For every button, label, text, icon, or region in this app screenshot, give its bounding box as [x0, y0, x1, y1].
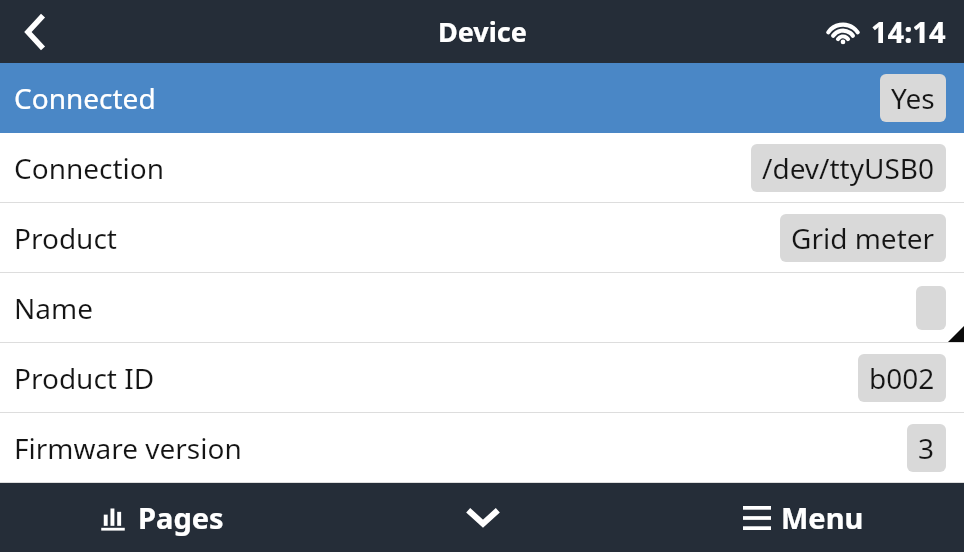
other: Wi-Fi [825, 18, 861, 46]
staticText: Name [14, 289, 93, 327]
staticText: 14:14 [871, 12, 946, 51]
staticText: Menu [781, 498, 864, 537]
staticText: /dev/ttyUSB0 [762, 149, 935, 187]
button[interactable]: Product [0, 203, 964, 273]
staticText: Firmware version [14, 429, 242, 467]
button[interactable]: Name [0, 273, 964, 343]
staticText: b002 [869, 359, 935, 397]
staticText: Product [14, 219, 117, 257]
staticText: Yes [891, 79, 935, 117]
staticText: Product ID [14, 359, 155, 397]
staticText: 3 [918, 429, 935, 467]
staticText: Device [438, 13, 527, 50]
button[interactable]: Firmware version [0, 413, 964, 483]
staticText: Connected [14, 79, 156, 117]
button[interactable]: Connection [0, 133, 964, 203]
staticText: Grid meter [791, 219, 935, 257]
button[interactable]: Expand [322, 483, 643, 552]
button[interactable]: Product ID [0, 343, 964, 413]
button[interactable]: Pages [0, 483, 322, 552]
button[interactable]: Connected [0, 63, 964, 133]
button[interactable]: Menu [643, 483, 964, 552]
button[interactable]: Back [0, 0, 70, 63]
staticText: Pages [138, 498, 224, 537]
staticText: Connection [14, 149, 165, 187]
